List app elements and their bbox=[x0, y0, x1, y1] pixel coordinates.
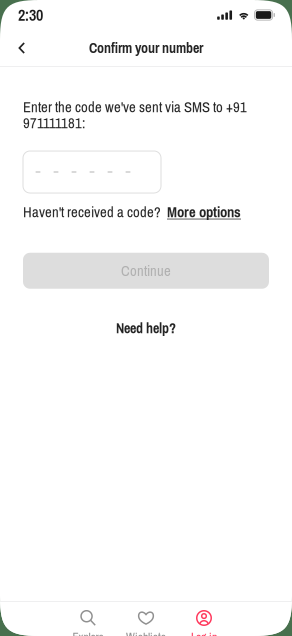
staticText: 2:30 bbox=[18, 4, 43, 26]
staticText: Log in bbox=[191, 629, 217, 636]
staticText: Haven't received a code? bbox=[23, 202, 161, 222]
button[interactable]: More options bbox=[167, 202, 241, 222]
button[interactable]: Explore bbox=[59, 602, 117, 636]
staticText: 971111181: bbox=[23, 113, 85, 133]
button[interactable]: Log in bbox=[175, 602, 233, 636]
staticText: Wishlists bbox=[126, 629, 166, 636]
staticText: Confirm your number bbox=[89, 39, 203, 57]
staticText: Continue bbox=[121, 261, 171, 281]
button[interactable]: Continue bbox=[23, 253, 269, 289]
staticText: Need help? bbox=[116, 319, 176, 338]
staticText: Explore bbox=[72, 629, 103, 636]
button[interactable]: Back bbox=[4, 30, 40, 66]
staticText: More options bbox=[167, 202, 241, 222]
button[interactable]: Wishlists bbox=[117, 602, 175, 636]
staticText: Enter the code we've sent via SMS to +91 bbox=[23, 97, 247, 117]
button[interactable]: Need help? bbox=[23, 319, 269, 338]
